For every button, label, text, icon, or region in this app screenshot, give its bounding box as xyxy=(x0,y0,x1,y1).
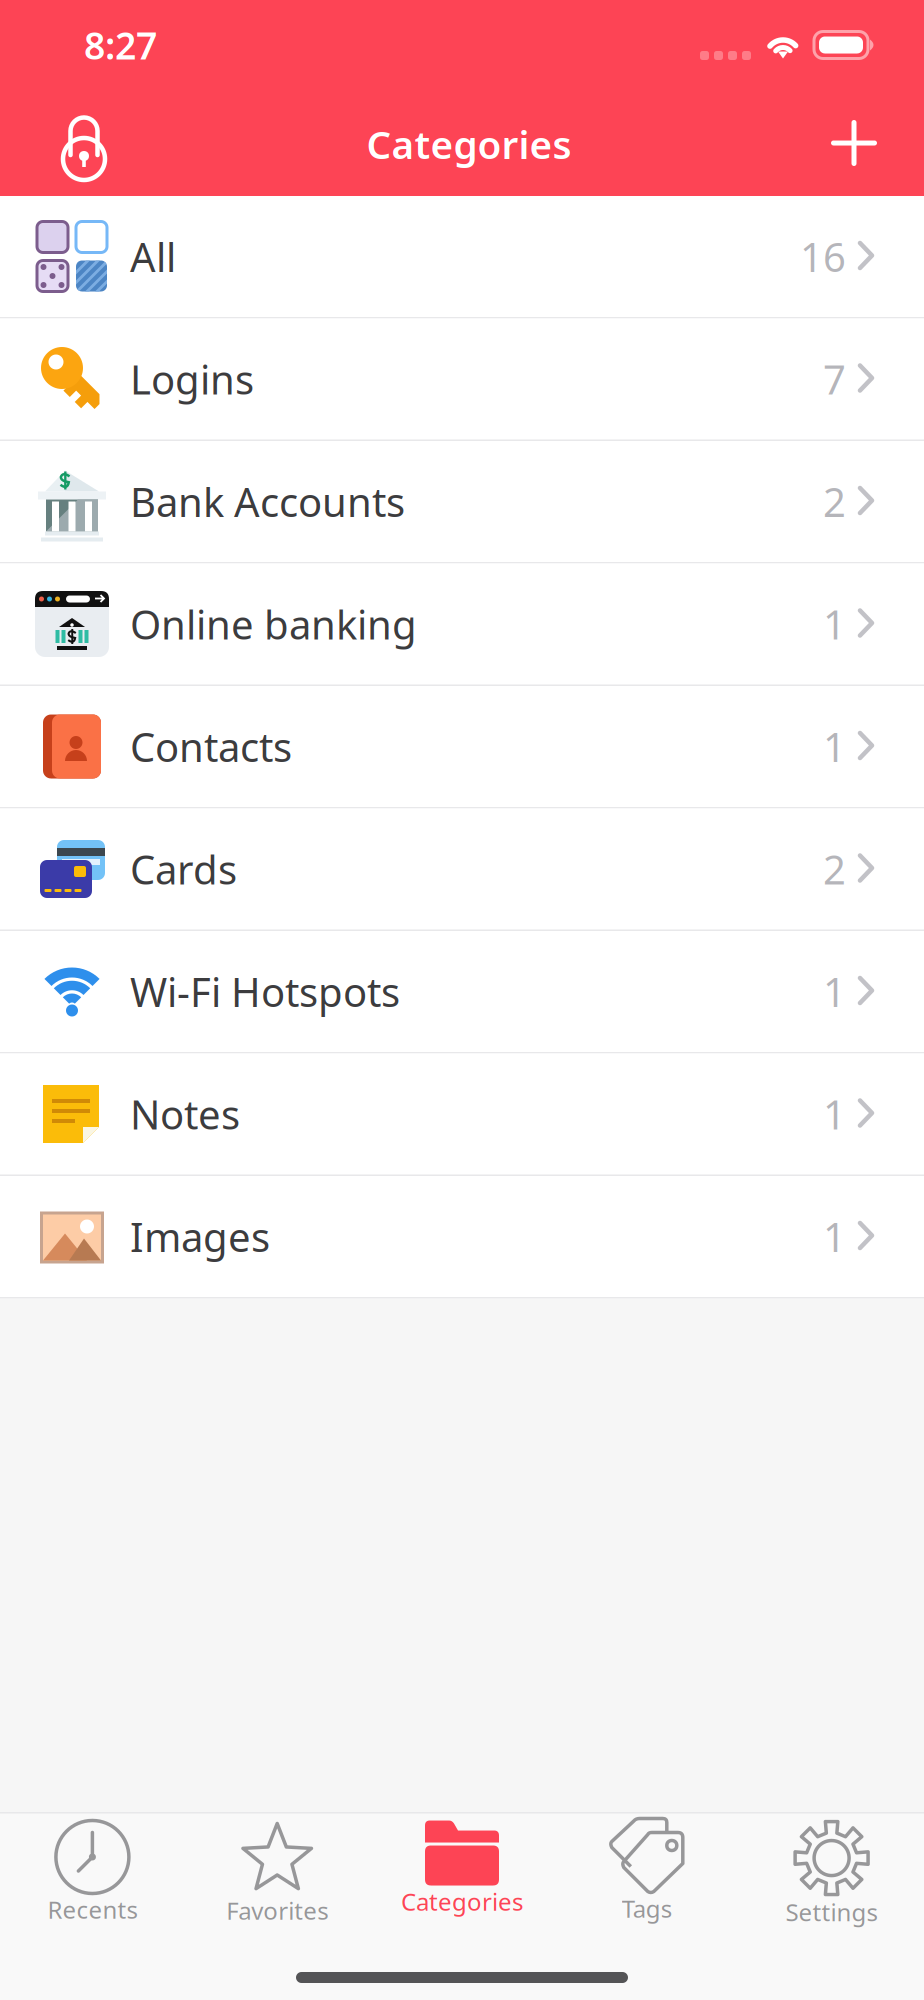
button[interactable]: Categories xyxy=(370,1813,554,1935)
staticText: 1 xyxy=(823,1087,846,1140)
staticText: Contacts xyxy=(130,720,292,773)
button[interactable]: Cards xyxy=(0,808,924,931)
button[interactable]: Images xyxy=(0,1176,924,1298)
staticText: 2 xyxy=(823,475,846,528)
button[interactable]: Favorites xyxy=(185,1813,370,1935)
staticText: Settings xyxy=(786,1896,878,1928)
staticText: Notes xyxy=(130,1087,240,1140)
staticText: 1 xyxy=(823,1210,846,1263)
staticText: Online banking xyxy=(130,597,417,650)
button[interactable]: Bank Accounts xyxy=(0,441,924,563)
button[interactable]: Settings xyxy=(739,1813,924,1935)
staticText: Images xyxy=(130,1210,270,1263)
staticText: Tags xyxy=(622,1892,672,1924)
staticText: 1 xyxy=(823,720,846,773)
button[interactable]: Logins xyxy=(0,318,924,441)
button[interactable]: Lock xyxy=(32,90,136,196)
staticText: Cards xyxy=(130,842,237,895)
button[interactable]: Add xyxy=(802,90,906,196)
staticText: 1 xyxy=(823,965,846,1018)
button[interactable]: Contacts xyxy=(0,686,924,808)
staticText: 1 xyxy=(823,597,846,650)
button[interactable]: Tags xyxy=(554,1813,739,1935)
button[interactable]: Recents xyxy=(0,1813,185,1935)
staticText: Categories xyxy=(366,118,571,170)
staticText: All xyxy=(130,230,176,283)
staticText: 16 xyxy=(800,230,846,283)
staticText: Logins xyxy=(130,352,254,405)
button[interactable]: Wi-Fi Hotspots xyxy=(0,931,924,1053)
staticText: 2 xyxy=(823,842,846,895)
staticText: Bank Accounts xyxy=(130,475,405,528)
button[interactable]: Online banking xyxy=(0,563,924,686)
staticText: Recents xyxy=(47,1893,137,1925)
staticText: 8:27 xyxy=(84,20,157,70)
staticText: 7 xyxy=(823,352,846,405)
staticText: Categories xyxy=(401,1885,523,1917)
staticText: Wi-Fi Hotspots xyxy=(130,965,400,1018)
button[interactable]: Notes xyxy=(0,1053,924,1176)
button[interactable]: All xyxy=(0,196,924,318)
staticText: Favorites xyxy=(226,1894,328,1926)
